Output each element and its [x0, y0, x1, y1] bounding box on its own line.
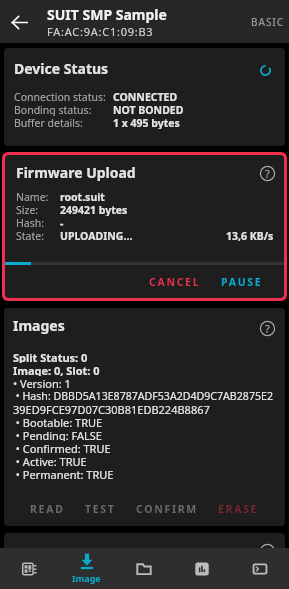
staticText: • Version: 1 — [13, 376, 71, 389]
staticText: READ — [30, 502, 65, 516]
staticText: State: — [16, 229, 44, 242]
button[interactable]: Stats — [173, 548, 231, 589]
button[interactable]: Shell — [231, 548, 289, 589]
staticText: CONFIRM — [136, 502, 198, 516]
staticText: • Confirmed: TRUE — [13, 441, 111, 454]
button[interactable]: Refresh — [257, 62, 274, 79]
staticText: root.suit — [60, 190, 105, 203]
button[interactable]: ERASE — [212, 497, 265, 521]
button[interactable]: READ — [24, 497, 71, 521]
staticText: PAUSE — [221, 275, 263, 289]
staticText: SUIT SMP Sample — [47, 5, 167, 24]
staticText: 13,6 KB/s — [226, 229, 274, 242]
button[interactable]: Image — [57, 548, 115, 589]
staticText: • Permanent: TRUE — [13, 467, 114, 480]
staticText: Buffer details: — [14, 116, 83, 129]
staticText: CONNECTED — [113, 90, 178, 103]
staticText: Image: 0, Slot: 0 — [13, 363, 100, 376]
button[interactable]: PAUSE — [215, 270, 269, 294]
staticText: ERASE — [218, 502, 259, 516]
staticText: UPLOADING… — [60, 229, 133, 242]
staticText: 1 x 495 bytes — [113, 116, 180, 129]
staticText: Images — [13, 316, 65, 335]
button[interactable]: CONFIRM — [130, 497, 204, 521]
staticText: Name: — [16, 190, 49, 203]
staticText: TEST — [85, 502, 116, 516]
staticText: 39ED9FCE97D07C30B81EDB224B8867 — [13, 402, 210, 415]
staticText: Connection status: — [14, 90, 106, 103]
staticText: CANCEL — [149, 275, 201, 289]
staticText: Bonding status: — [14, 103, 92, 116]
button[interactable]: BASIC — [241, 9, 289, 35]
button[interactable]: CANCEL — [143, 270, 207, 294]
staticText: Image — [72, 572, 101, 584]
staticText: BASIC — [251, 15, 284, 29]
button[interactable]: Back — [3, 6, 35, 38]
staticText: Size: — [16, 203, 39, 216]
staticText: • Hash: DBBD5A13E8787ADF53A2D4D9C7AB2875… — [13, 389, 273, 402]
staticText: • Bootable: TRUE — [13, 415, 103, 428]
staticText: Hash: — [16, 216, 45, 229]
staticText: Firmware Upload — [16, 163, 136, 182]
button[interactable]: Help — [254, 160, 280, 186]
staticText: - — [60, 216, 64, 229]
staticText: NOT BONDED — [113, 103, 184, 116]
button[interactable]: Device — [0, 548, 57, 589]
staticText: FA:AC:9A:C1:09:B3 — [47, 24, 154, 39]
staticText: • Active: TRUE — [13, 454, 87, 467]
staticText: • Pending: FALSE — [13, 428, 102, 441]
button[interactable]: Help — [254, 538, 280, 564]
button[interactable]: Help — [254, 315, 280, 341]
staticText: ? — [265, 321, 270, 336]
staticText: ? — [265, 166, 270, 181]
staticText: Device Status — [14, 59, 109, 78]
button[interactable]: Files — [115, 548, 173, 589]
staticText: 249421 bytes — [60, 203, 128, 216]
staticText: Split Status: 0 — [13, 350, 88, 363]
button[interactable]: TEST — [79, 497, 122, 521]
staticText: ? — [265, 544, 270, 559]
